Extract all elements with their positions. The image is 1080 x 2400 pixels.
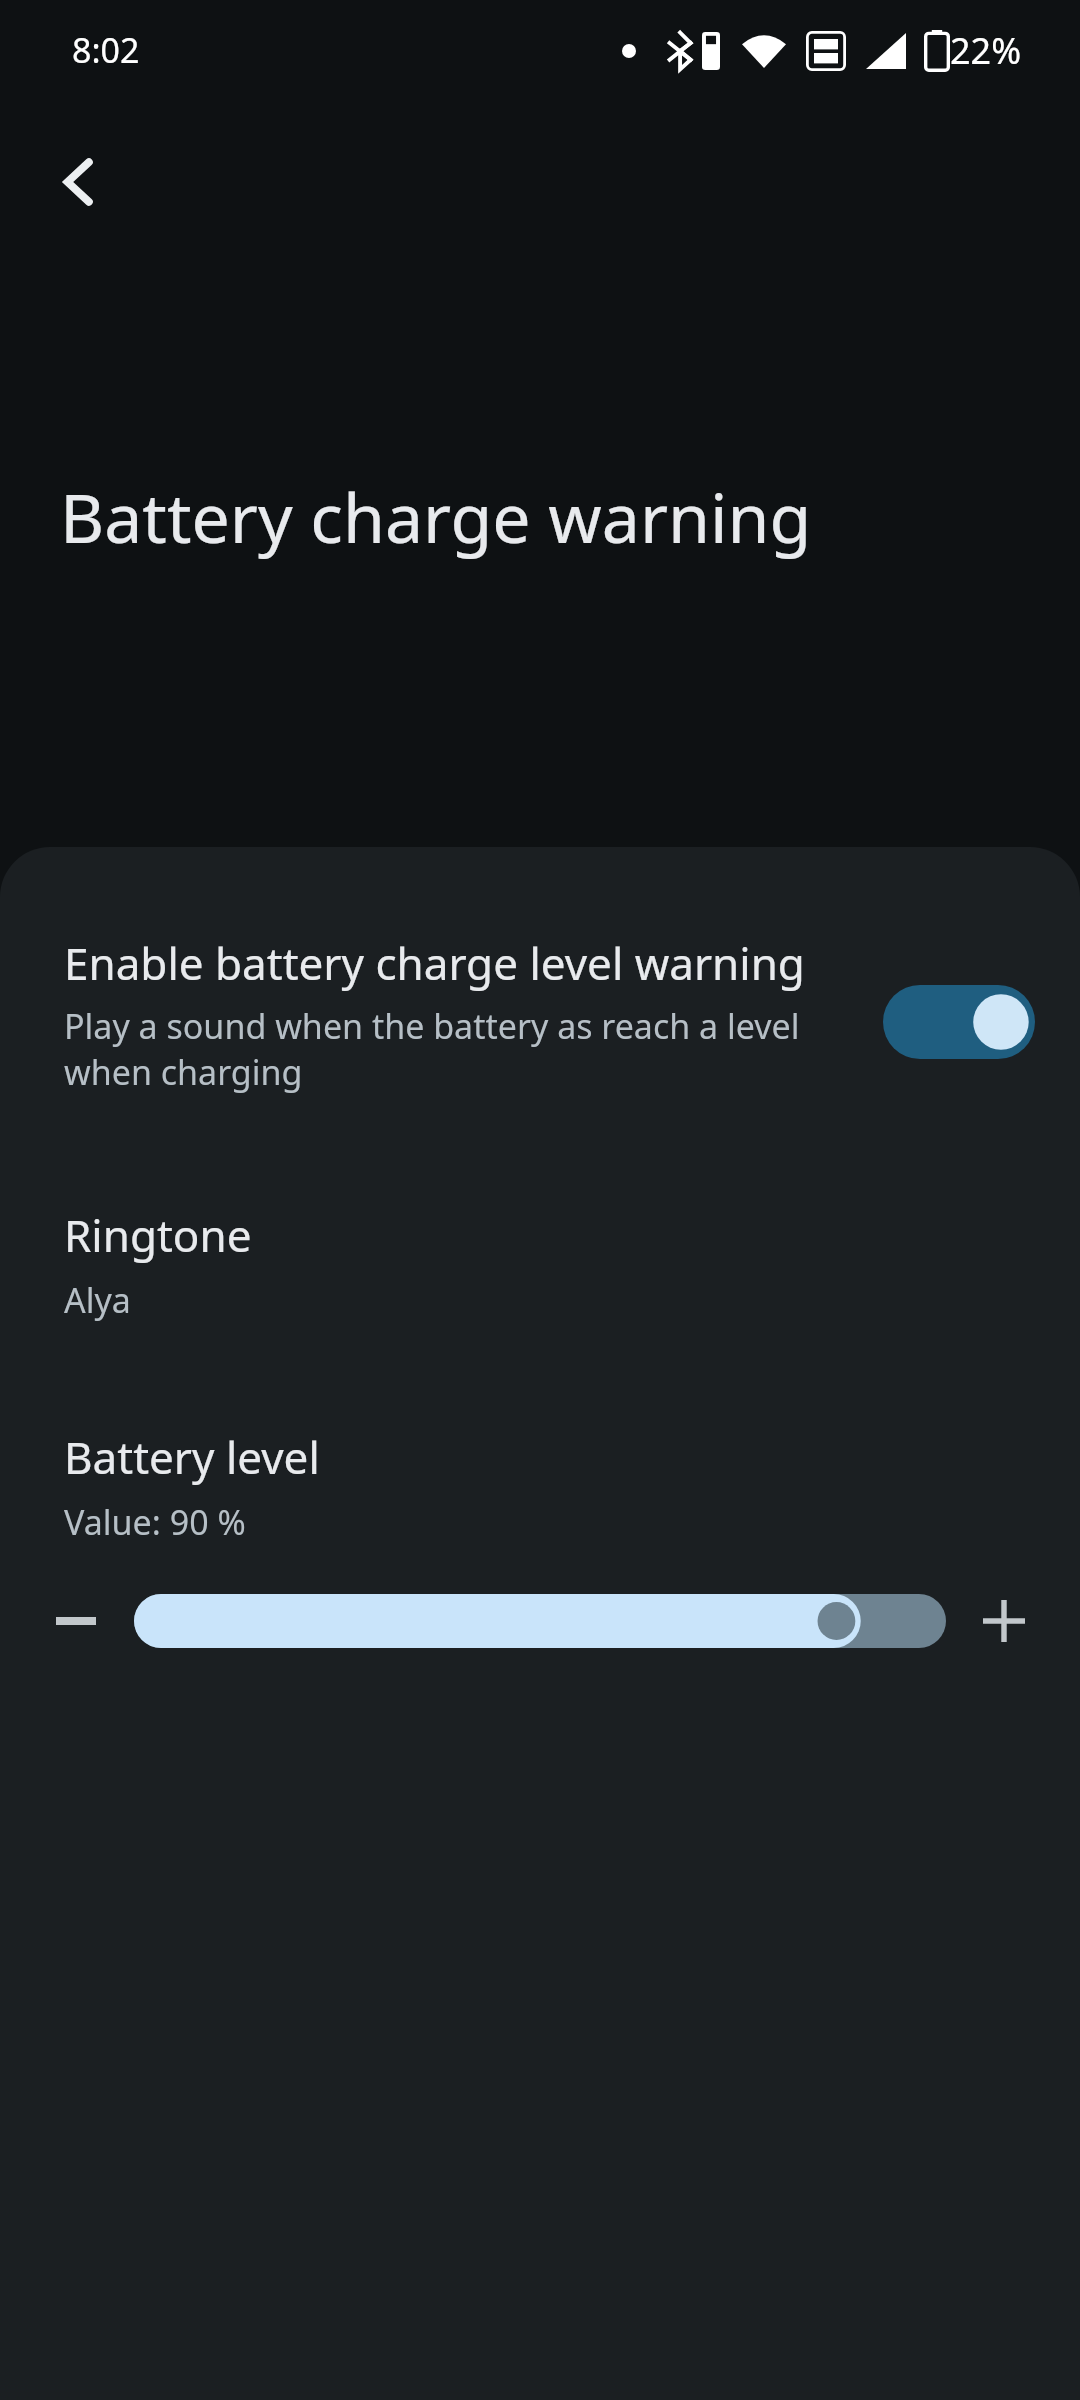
button[interactable]: Enable battery charge level warning [0,933,1080,1095]
button[interactable]: Ringtone [0,1205,1080,1323]
button[interactable]: Back [36,140,120,224]
button[interactable]: Decrease [28,1573,124,1669]
button[interactable]: Battery level slider [134,1573,946,1669]
staticText: Value: 90 % [64,1499,246,1545]
staticText: 22% [950,26,1022,75]
staticText: Enable battery charge level warning [64,933,805,993]
staticText: Alya [64,1277,131,1323]
staticText: 8:02 [72,27,140,73]
staticText: Battery level [64,1427,320,1487]
staticText: Battery charge warning [60,470,812,563]
button[interactable]: Increase [956,1573,1052,1669]
staticText: Ringtone [64,1205,252,1265]
staticText: Play a sound when the battery as reach a… [64,1003,863,1095]
